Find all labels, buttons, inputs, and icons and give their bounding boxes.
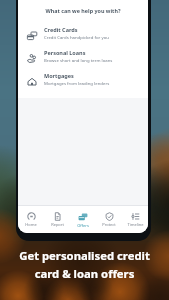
staticText: Credit Cards handpicked for you — [44, 34, 109, 40]
button[interactable]: Offers — [70, 210, 96, 230]
button[interactable]: Report — [44, 210, 70, 229]
staticText: Mortgages from leading lenders — [44, 80, 110, 86]
staticText: Get personalised credit card & loan offe… — [19, 248, 150, 281]
staticText: Offers — [77, 223, 89, 228]
staticText: Home — [25, 222, 37, 227]
button[interactable]: Protect — [96, 210, 122, 229]
staticText: Protect — [102, 222, 116, 227]
staticText: Timeline — [127, 222, 144, 227]
button[interactable]: Mortgages — [18, 67, 148, 90]
staticText: What can we help you with? — [18, 7, 148, 14]
button[interactable]: Credit Cards — [18, 21, 148, 44]
staticText: Credit Cards — [44, 26, 78, 33]
staticText: Mortgages — [44, 72, 74, 79]
button[interactable]: Home — [18, 210, 44, 229]
button[interactable]: Personal Loans — [18, 44, 148, 67]
staticText: Personal Loans — [44, 49, 86, 56]
staticText: Browse short and long term loans — [44, 57, 113, 63]
button[interactable]: Timeline — [122, 210, 148, 229]
staticText: Report — [51, 222, 64, 227]
